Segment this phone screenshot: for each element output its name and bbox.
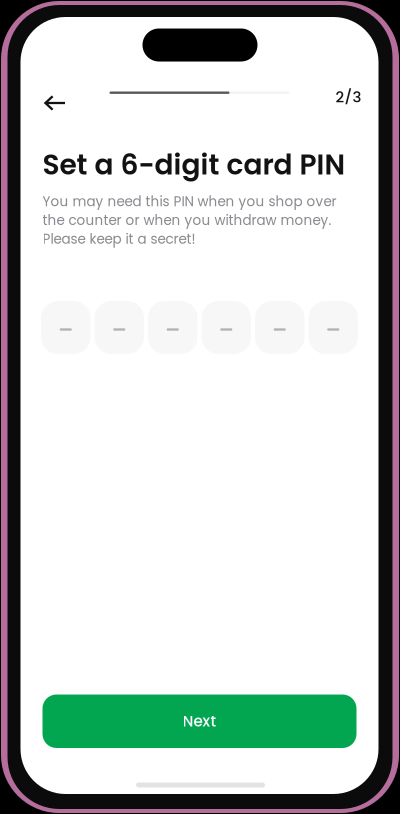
- button[interactable]: Back: [35, 85, 75, 121]
- staticText: 2/3: [335, 86, 361, 107]
- staticText: Set a 6-digit card PIN: [42, 145, 345, 184]
- staticText: Next: [182, 711, 216, 732]
- button[interactable]: Next: [42, 694, 356, 748]
- staticText: You may need this PIN when you shop over…: [42, 192, 336, 249]
